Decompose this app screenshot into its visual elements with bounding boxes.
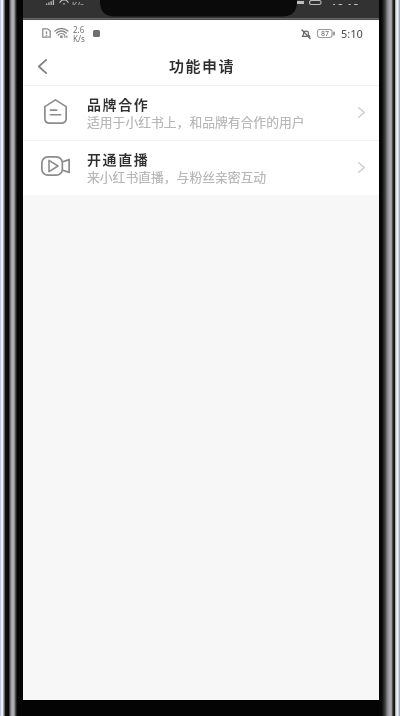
staticText: 适用于小红书上，和品牌有合作的用户 [87, 112, 305, 131]
staticText: K/s [73, 33, 85, 44]
staticText: 87 [321, 29, 330, 38]
staticText: 2.6 [73, 24, 85, 35]
staticText: 功能申请 [169, 55, 236, 77]
staticText: 来小红书直播，与粉丝亲密互动 [87, 167, 267, 186]
button[interactable]: 开通直播 [23, 141, 379, 195]
staticText: 品牌合作 [87, 94, 150, 114]
staticText: 开通直播 [87, 149, 150, 169]
staticText: K/s [72, 0, 84, 5]
button[interactable]: 品牌合作 [23, 86, 379, 140]
staticText: 5:10 [341, 26, 363, 41]
button[interactable]: Back [26, 50, 58, 82]
staticText: 10:10 [331, 0, 360, 5]
